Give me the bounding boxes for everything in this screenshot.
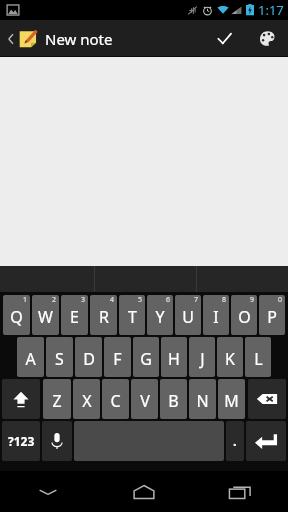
staticText: 4 — [110, 295, 115, 305]
button[interactable]: Save note — [202, 20, 246, 57]
button[interactable]: O — [231, 295, 257, 335]
staticText: Q — [10, 306, 23, 328]
button[interactable]: H — [161, 337, 187, 377]
button[interactable]: S — [46, 337, 73, 377]
staticText: 3 — [81, 295, 86, 305]
staticText: U — [182, 306, 194, 328]
staticText: N — [196, 390, 209, 412]
staticText: E — [70, 306, 79, 328]
staticText: C — [110, 390, 121, 412]
button[interactable]: Enter — [246, 421, 286, 461]
staticText: S — [55, 348, 64, 370]
staticText: 1:17 — [258, 1, 284, 19]
button[interactable]: . — [226, 421, 244, 461]
staticText: J — [200, 348, 205, 370]
button[interactable]: K — [217, 337, 243, 377]
staticText: O — [238, 306, 251, 328]
staticText: . — [233, 432, 237, 450]
staticText: 8 — [222, 295, 227, 305]
staticText: 6 — [166, 295, 171, 305]
button[interactable]: V — [131, 379, 158, 419]
staticText: 7 — [194, 295, 199, 305]
button[interactable]: C — [102, 379, 129, 419]
staticText: M — [224, 390, 239, 412]
button[interactable]: A — [17, 337, 44, 377]
button[interactable]: J — [189, 337, 215, 377]
staticText: K — [225, 348, 235, 370]
button[interactable]: B — [160, 379, 187, 419]
staticText: Z — [52, 390, 62, 412]
staticText: A — [25, 348, 36, 370]
button[interactable]: I — [203, 295, 229, 335]
staticText: L — [254, 348, 263, 370]
staticText: 0 — [278, 295, 283, 305]
button[interactable]: Y — [147, 295, 173, 335]
staticText: X — [82, 390, 92, 412]
button[interactable]: X — [73, 379, 100, 419]
staticText: P — [267, 306, 277, 328]
staticText: 9 — [250, 295, 255, 305]
button[interactable]: Q — [3, 295, 30, 335]
button[interactable]: U — [175, 295, 201, 335]
staticText: V — [140, 390, 150, 412]
button[interactable]: E — [61, 295, 88, 335]
button[interactable]: M — [218, 379, 245, 419]
button[interactable]: New note — [4, 24, 116, 53]
staticText: T — [128, 306, 137, 328]
button[interactable]: R — [90, 295, 117, 335]
button[interactable]: Hide keyboard — [0, 471, 96, 512]
staticText: 5 — [138, 295, 143, 305]
staticText: 1 — [23, 295, 28, 305]
button[interactable]: Shift — [2, 379, 40, 419]
button[interactable]: ?123 — [2, 421, 40, 461]
button[interactable]: Voice input — [42, 421, 72, 461]
staticText: ?123 — [8, 433, 35, 449]
button[interactable]: Backspace — [248, 379, 286, 419]
staticText: R — [99, 306, 109, 328]
button[interactable]: Recent apps — [192, 471, 288, 512]
staticText: H — [168, 348, 180, 370]
staticText: I — [213, 306, 219, 328]
button[interactable]: P — [259, 295, 285, 335]
button[interactable]: N — [189, 379, 216, 419]
staticText: Y — [155, 306, 165, 328]
button[interactable]: T — [119, 295, 145, 335]
button[interactable]: D — [75, 337, 102, 377]
staticText: D — [83, 348, 95, 370]
staticText: New note — [45, 29, 113, 49]
staticText: W — [38, 306, 53, 328]
button[interactable]: Z — [43, 379, 71, 419]
button[interactable]: F — [104, 337, 131, 377]
button[interactable]: L — [245, 337, 271, 377]
staticText: G — [140, 348, 152, 370]
staticText: 2 — [52, 295, 57, 305]
button[interactable]: Home — [96, 471, 192, 512]
button[interactable]: G — [133, 337, 159, 377]
staticText: B — [168, 390, 179, 412]
staticText: F — [113, 348, 122, 370]
button[interactable]: W — [32, 295, 59, 335]
button[interactable]: Change color — [246, 20, 288, 57]
